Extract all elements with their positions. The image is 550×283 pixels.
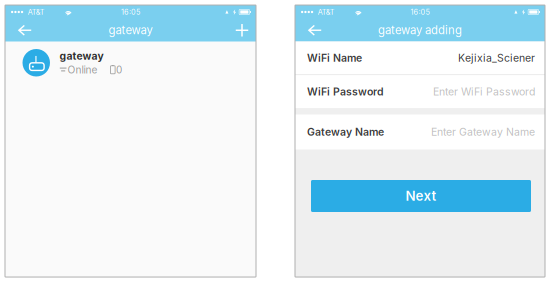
staticText: Enter Gateway Name [431, 126, 535, 138]
button[interactable]: Back [304, 19, 326, 41]
staticText: Kejixia_Sciener [458, 52, 535, 64]
staticText: 16:05 [121, 8, 140, 16]
button[interactable]: Gateway Name [295, 114, 545, 149]
staticText: Gateway Name [307, 126, 384, 138]
staticText: gateway [59, 50, 103, 62]
button[interactable]: Next [311, 180, 531, 212]
button[interactable]: WiFi Name [295, 41, 545, 74]
staticText: AT&T [318, 8, 335, 16]
staticText: 0 [116, 64, 122, 76]
staticText: gateway adding [378, 23, 462, 37]
staticText: gateway [108, 23, 152, 37]
button[interactable]: Add gateway [231, 19, 253, 41]
staticText: Next [405, 188, 436, 204]
staticText: AT&T [28, 8, 45, 16]
button[interactable]: gateway [5, 41, 256, 84]
staticText: WiFi Password [307, 85, 384, 98]
staticText: Enter WiFi Password [433, 85, 535, 98]
staticText: WiFi Name [307, 52, 362, 64]
staticText: 16:05 [410, 8, 429, 16]
button[interactable]: Back [14, 19, 36, 41]
button[interactable]: WiFi Password [295, 75, 545, 108]
staticText: Online [67, 64, 97, 76]
